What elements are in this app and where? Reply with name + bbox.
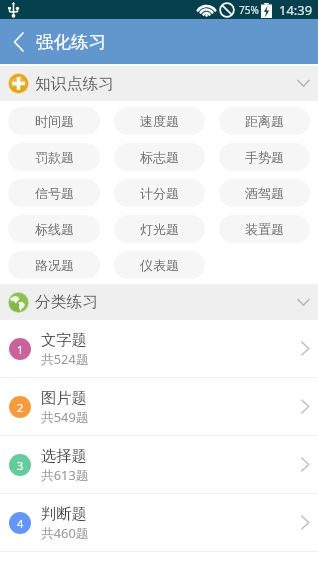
staticText: 2 (17, 400, 24, 415)
button[interactable]: 标线题 (8, 215, 100, 243)
staticText: 标线题 (35, 221, 74, 237)
button[interactable]: 酒驾题 (219, 179, 310, 207)
button[interactable]: Back (0, 19, 36, 64)
staticText: 75% (239, 3, 259, 17)
staticText: 判断题 (41, 504, 87, 523)
button[interactable]: 分类练习 (0, 284, 318, 320)
button[interactable]: 路况题 (8, 251, 100, 279)
button[interactable]: 知识点练习 (0, 66, 318, 101)
button[interactable]: 手势题 (219, 143, 310, 171)
button[interactable]: 时间题 (8, 107, 100, 135)
staticText: 图片题 (41, 388, 87, 407)
staticText: 知识点练习 (35, 74, 114, 94)
staticText: 罚款题 (35, 149, 74, 165)
staticText: 4 (17, 516, 24, 531)
staticText: 选择题 (41, 446, 87, 465)
button[interactable]: 罚款题 (8, 143, 100, 171)
staticText: 时间题 (35, 113, 74, 129)
button[interactable]: 装置题 (219, 215, 310, 243)
staticText: 14:39 (279, 1, 313, 19)
staticText: 强化练习 (36, 31, 106, 53)
button[interactable]: 3 (0, 436, 318, 493)
button[interactable]: 灯光题 (114, 215, 205, 243)
button[interactable]: 信号题 (8, 179, 100, 207)
staticText: 速度题 (140, 113, 179, 129)
staticText: 信号题 (35, 185, 74, 201)
staticText: 共460题 (41, 524, 89, 541)
button[interactable]: 仪表题 (114, 251, 205, 279)
staticText: 计分题 (140, 185, 179, 201)
button[interactable]: 计分题 (114, 179, 205, 207)
staticText: 分类练习 (35, 292, 99, 312)
button[interactable]: 距离题 (219, 107, 310, 135)
staticText: 手势题 (245, 149, 284, 165)
staticText: 装置题 (245, 221, 284, 237)
staticText: 仪表题 (140, 257, 179, 273)
staticText: 灯光题 (140, 221, 179, 237)
button[interactable]: 2 (0, 378, 318, 435)
button[interactable]: 4 (0, 494, 318, 551)
staticText: 3 (17, 458, 24, 473)
staticText: 共524题 (41, 350, 89, 367)
staticText: 标志题 (140, 149, 179, 165)
staticText: 路况题 (35, 257, 74, 273)
staticText: 距离题 (245, 113, 284, 129)
button[interactable]: 标志题 (114, 143, 205, 171)
staticText: 共613题 (41, 466, 89, 483)
button[interactable]: 速度题 (114, 107, 205, 135)
staticText: 酒驾题 (245, 185, 284, 201)
staticText: 共549题 (41, 408, 89, 425)
staticText: 1 (17, 342, 24, 357)
button[interactable]: 1 (0, 320, 318, 377)
staticText: 文字题 (41, 330, 87, 349)
